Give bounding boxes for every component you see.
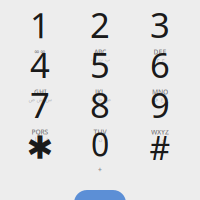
button[interactable]: 1 [12,12,68,52]
staticText: TUV [93,128,106,136]
staticText: DEF [153,48,166,56]
button[interactable]: 8 [72,92,128,132]
staticText: GHI [34,88,46,96]
staticText: 8 [90,81,110,127]
staticText: JKL [95,88,105,96]
button[interactable]: 6 [132,52,188,92]
button[interactable]: 5 [72,52,128,92]
staticText: 2 [90,1,110,47]
staticText: 7 [30,81,50,127]
staticText: WXYZ [151,128,169,136]
staticText: 3 [150,1,170,47]
button[interactable]: 9 [132,92,188,132]
staticText: س ش ص [28,96,52,102]
button[interactable]: 0 [72,132,128,172]
staticText: ع غ ف [152,96,168,102]
staticText: 5 [90,41,110,87]
button[interactable]: Pound [132,132,188,172]
button[interactable]: 2 [72,12,128,52]
button[interactable]: 4 [12,52,68,92]
staticText: PQRS [31,128,48,136]
staticText: 4 [30,41,50,87]
staticText: ABC [94,48,106,56]
staticText: ج ح [156,56,164,62]
button[interactable]: Star [12,132,68,172]
staticText: ∞∞ [34,48,46,55]
staticText: ض ط ظ [90,96,110,102]
staticText: # [149,126,170,169]
button[interactable]: Call [74,190,126,200]
staticText: 1 [30,2,50,48]
staticText: م ن ه [93,136,107,142]
button[interactable]: 7 [12,92,68,132]
staticText: ق ك ل [32,136,48,142]
staticText: 9 [150,81,170,127]
staticText: MNO [152,88,168,96]
staticText: ✱ [26,129,53,166]
staticText: ب ت ث [90,56,109,62]
staticText: + [98,165,102,174]
staticText: 0 [91,123,109,165]
button[interactable]: 3 [132,12,188,52]
staticText: و ي [155,136,164,142]
staticText: 6 [150,41,170,87]
